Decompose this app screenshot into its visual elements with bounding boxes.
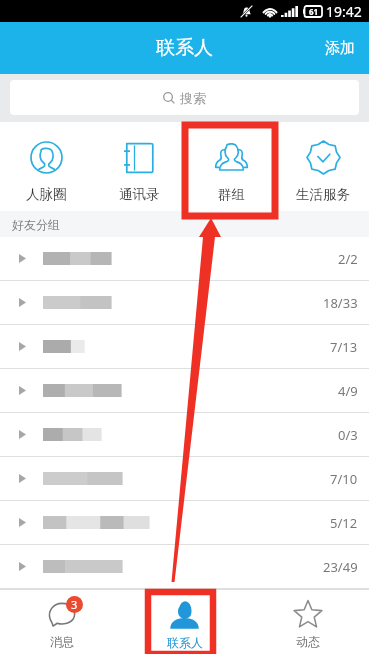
staticText: 0/3 — [338, 426, 358, 444]
button[interactable]: 0/3 — [0, 413, 369, 456]
staticText: 生活服务 — [296, 186, 350, 203]
staticText: 18/33 — [323, 294, 358, 312]
button[interactable]: 7/10 — [0, 457, 369, 500]
staticText: 7/10 — [330, 470, 358, 488]
staticText: 消息 — [50, 634, 74, 649]
button[interactable]: 动态 — [246, 590, 369, 654]
button[interactable]: 5/12 — [0, 501, 369, 544]
staticText: 添加 — [325, 39, 355, 58]
button[interactable]: 2/2 — [0, 237, 369, 280]
button[interactable]: 23/49 — [0, 545, 369, 588]
staticText: 联系人 — [156, 36, 213, 60]
button[interactable]: 4/9 — [0, 369, 369, 412]
other: 消息 — [48, 600, 76, 629]
staticText: 通讯录 — [119, 186, 160, 203]
button[interactable]: 7/13 — [0, 325, 369, 368]
staticText: 7/13 — [330, 338, 358, 356]
button[interactable]: 消息 — [0, 590, 123, 654]
staticText: 19:42 — [326, 2, 362, 21]
other: 联系人 — [169, 600, 200, 630]
button[interactable]: 群组 — [185, 122, 277, 211]
staticText: 5/12 — [330, 514, 358, 532]
staticText: 群组 — [218, 186, 245, 203]
button[interactable]: 通讯录 — [93, 122, 185, 211]
button[interactable]: 生活服务 — [277, 122, 369, 211]
staticText: 人脉圈 — [26, 186, 67, 203]
staticText: 好友分组 — [12, 217, 60, 232]
other: 动态 — [294, 600, 322, 629]
staticText: 搜索 — [180, 90, 206, 106]
button[interactable]: 人脉圈 — [0, 122, 93, 211]
button[interactable]: 搜索 — [10, 80, 359, 115]
staticText: 3 — [71, 597, 78, 612]
button[interactable]: 添加 — [311, 29, 369, 68]
button[interactable]: 18/33 — [0, 281, 369, 324]
staticText: 23/49 — [323, 558, 358, 576]
staticText: 联系人 — [167, 635, 203, 650]
staticText: 动态 — [296, 634, 320, 649]
staticText: 2/2 — [338, 250, 358, 268]
button[interactable]: 联系人 — [123, 590, 246, 654]
staticText: 4/9 — [338, 382, 358, 400]
staticText: 61 — [309, 6, 319, 17]
